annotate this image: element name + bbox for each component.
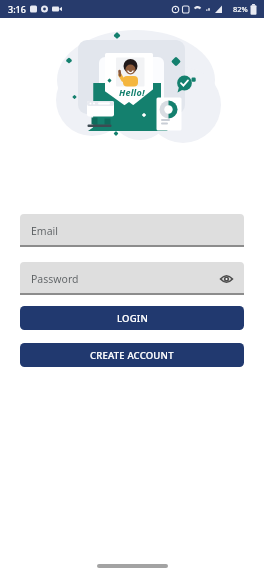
- button[interactable]: Password: [20, 262, 244, 295]
- staticText: CREATE ACCOUNT: [90, 349, 174, 362]
- staticText: Password: [31, 272, 79, 286]
- button[interactable]: Email: [20, 214, 244, 247]
- staticText: 3:16: [8, 3, 26, 15]
- staticText: LOGIN: [117, 312, 148, 325]
- staticText: Email: [31, 224, 58, 238]
- button[interactable]: LOGIN: [20, 306, 244, 330]
- button[interactable]: [217, 270, 235, 288]
- staticText: Hello!: [119, 86, 145, 98]
- staticText: 82%: [233, 4, 248, 14]
- button[interactable]: CREATE ACCOUNT: [20, 343, 244, 367]
